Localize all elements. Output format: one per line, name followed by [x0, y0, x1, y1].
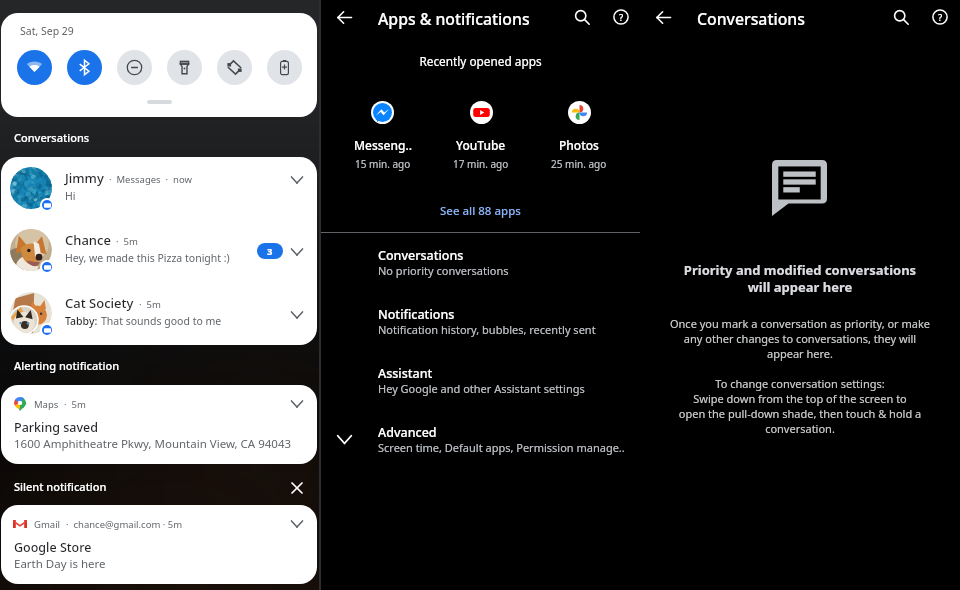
- staticText: · chance@gmail.com · 5m: [66, 518, 183, 531]
- staticText: Silent notification: [14, 479, 107, 494]
- staticText: · 5m: [64, 398, 86, 411]
- button[interactable]: Search: [888, 4, 914, 30]
- button[interactable]: Back: [650, 4, 676, 30]
- button[interactable]: Expand: [284, 391, 310, 417]
- button[interactable]: Advanced: [321, 424, 640, 476]
- staticText: Sat, Sep 29: [20, 24, 74, 38]
- button[interactable]: Expand: [284, 302, 310, 328]
- button[interactable]: Back: [331, 4, 357, 30]
- staticText: Maps: [34, 398, 59, 411]
- staticText: 17 min. ago: [453, 157, 509, 171]
- button[interactable]: Expand: [284, 239, 310, 265]
- staticText: Earth Day is here: [14, 556, 106, 572]
- staticText: That sounds good to me: [101, 314, 222, 328]
- button[interactable]: Clear all silent notifications: [285, 476, 309, 500]
- staticText: Apps & notifications: [378, 8, 530, 30]
- staticText: ?: [938, 11, 943, 24]
- button[interactable]: Bluetooth: [67, 50, 102, 85]
- button[interactable]: Conversations: [321, 247, 640, 299]
- button[interactable]: Messeng..: [333, 101, 432, 171]
- staticText: Conversations: [14, 130, 90, 145]
- button[interactable]: Auto-rotate: [217, 50, 252, 85]
- staticText: Tabby:: [65, 314, 101, 328]
- button[interactable]: Maps: [1, 385, 317, 464]
- button[interactable]: See all 88 apps: [321, 201, 640, 221]
- staticText: Alerting notification: [14, 358, 120, 373]
- button[interactable]: Chance: [1, 219, 317, 281]
- staticText: YouTube: [456, 137, 506, 153]
- staticText: 3: [267, 245, 273, 258]
- staticText: Recently opened apps: [321, 53, 640, 69]
- button[interactable]: Search: [569, 4, 595, 30]
- button[interactable]: Gmail: [1, 505, 317, 584]
- staticText: 15 min. ago: [355, 157, 411, 171]
- staticText: Advanced: [378, 424, 437, 441]
- button[interactable]: YouTube: [432, 101, 530, 171]
- button[interactable]: Jimmy: [1, 157, 317, 219]
- button[interactable]: Expand: [284, 167, 310, 193]
- button[interactable]: Wi-Fi: [17, 50, 52, 85]
- button[interactable]: Flashlight: [167, 50, 202, 85]
- staticText: Photos: [559, 137, 599, 153]
- staticText: Once you mark a conversation as priority…: [646, 316, 954, 436]
- staticText: 1600 Amphitheatre Pkwy, Mountain View, C…: [14, 436, 292, 452]
- button[interactable]: Do not disturb: [117, 50, 152, 85]
- staticText: Parking saved: [14, 419, 99, 436]
- staticText: Conversations: [697, 8, 805, 30]
- button[interactable]: Help: [927, 4, 953, 30]
- button[interactable]: Battery saver: [267, 50, 302, 85]
- staticText: ?: [619, 11, 624, 24]
- staticText: Gmail: [34, 518, 61, 531]
- staticText: See all 88 apps: [440, 203, 521, 219]
- button[interactable]: Expand: [284, 511, 310, 537]
- staticText: Jimmy: [65, 169, 104, 187]
- button[interactable]: Assistant: [321, 365, 640, 417]
- button[interactable]: Photos: [530, 101, 628, 171]
- staticText: Hey, we made this Pizza tonight :): [65, 251, 230, 265]
- staticText: · 5m: [139, 298, 161, 311]
- staticText: No priority conversations: [378, 263, 509, 278]
- staticText: Notifications: [378, 306, 455, 323]
- staticText: Conversations: [378, 247, 464, 264]
- staticText: Priority and modified conversations will…: [648, 261, 952, 296]
- staticText: · Messages · now: [109, 173, 192, 186]
- staticText: Messeng..: [354, 137, 412, 153]
- staticText: 25 min. ago: [551, 157, 607, 171]
- button[interactable]: Help: [608, 4, 634, 30]
- staticText: Google Store: [14, 539, 92, 556]
- staticText: Hi: [65, 189, 76, 203]
- button[interactable]: Cat Society: [1, 282, 317, 344]
- staticText: Assistant: [378, 365, 433, 382]
- staticText: Chance: [65, 231, 111, 249]
- staticText: Hey Google and other Assistant settings: [378, 381, 585, 396]
- button[interactable]: Notifications: [321, 306, 640, 358]
- staticText: Notification history, bubbles, recently …: [378, 322, 596, 337]
- staticText: Screen time, Default apps, Permission ma…: [378, 440, 625, 455]
- staticText: Cat Society: [65, 294, 134, 312]
- staticText: · 5m: [116, 235, 138, 248]
